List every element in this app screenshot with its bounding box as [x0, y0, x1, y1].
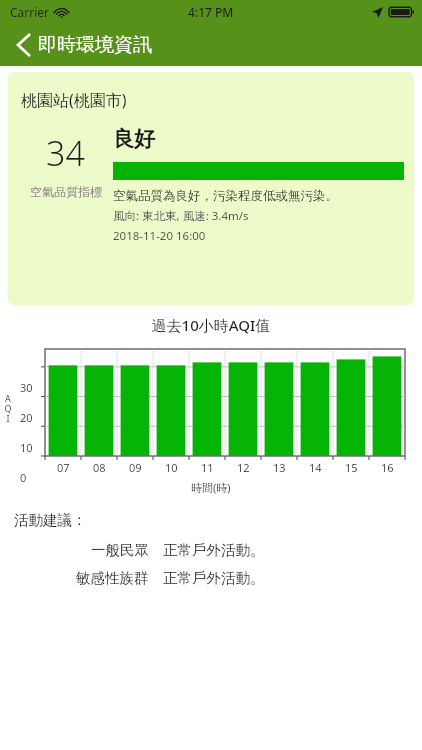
staticText: 敏感性族群 — [76, 569, 149, 587]
staticText: 11 — [201, 460, 214, 475]
staticText: 14 — [309, 460, 322, 475]
staticText: 07 — [57, 460, 70, 475]
staticText: 過去10小時AQI值 — [0, 315, 422, 335]
staticText: 4:17 PM — [188, 4, 234, 20]
button[interactable]: 桃園站(桃園市) — [8, 72, 414, 305]
staticText: 15 — [345, 460, 358, 475]
other: Back — [10, 32, 36, 58]
staticText: 正常戶外活動。 — [163, 569, 265, 587]
staticText: 空氣品質為良好，污染程度低或無污染。 — [113, 188, 338, 204]
staticText: 08 — [93, 460, 106, 475]
staticText: 12 — [237, 460, 250, 475]
staticText: Carrier — [10, 4, 50, 20]
staticText: 30 — [20, 380, 33, 395]
staticText: 桃園站(桃園市) — [21, 89, 127, 111]
staticText: 13 — [273, 460, 286, 475]
staticText: 16 — [381, 460, 394, 475]
staticText: 09 — [129, 460, 142, 475]
button[interactable]: Back — [10, 32, 152, 58]
staticText: 一般民眾 — [91, 541, 149, 559]
staticText: 空氣品質指標 — [30, 184, 102, 199]
staticText: 風向: 東北東, 風速: 3.4m/s — [113, 208, 249, 224]
staticText: 活動建議： — [14, 511, 87, 529]
staticText: 即時環境資訊 — [38, 33, 152, 57]
staticText: 正常戶外活動。 — [163, 541, 265, 559]
staticText: 34 — [46, 130, 85, 176]
staticText: 良好 — [113, 126, 155, 152]
staticText: 時間(時) — [191, 480, 231, 495]
staticText: A Q I — [4, 392, 12, 424]
staticText: 10 — [165, 460, 178, 475]
staticText: 2018-11-20 16:00 — [113, 228, 206, 244]
staticText: 10 — [20, 440, 33, 455]
staticText: 0 — [20, 470, 27, 485]
staticText: 20 — [20, 410, 33, 425]
